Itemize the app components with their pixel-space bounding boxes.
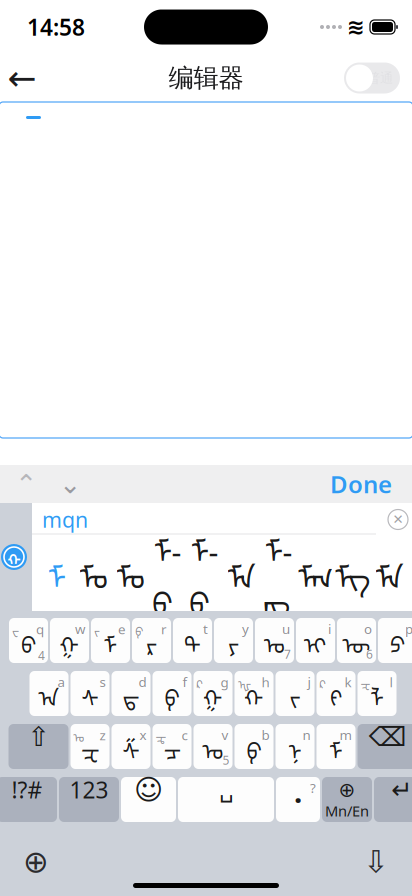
button[interactable]: Dictate — [348, 840, 404, 884]
staticText: o — [364, 620, 372, 638]
staticText: a — [57, 673, 64, 691]
button[interactable]: Return — [374, 777, 412, 822]
staticText: ᠬ — [7, 544, 20, 569]
button[interactable]: b — [234, 724, 273, 769]
staticText: ᠽ — [360, 672, 370, 692]
button[interactable]: i — [296, 618, 335, 663]
staticText: ᠮᠡ — [375, 545, 403, 598]
button[interactable]: ᠮᠬ — [297, 534, 334, 608]
staticText: ᠫ — [390, 621, 405, 660]
button[interactable]: k — [316, 671, 355, 716]
staticText: ᠼ — [155, 725, 166, 745]
staticText: ᠮᠤ — [116, 545, 144, 598]
staticText: ᠮᠥ — [190, 519, 218, 624]
button[interactable]: Previous field — [4, 465, 48, 503]
button[interactable]: ᠮᠥ — [186, 534, 223, 608]
staticText: ᠱ — [122, 727, 139, 766]
staticText: b — [261, 726, 269, 744]
button[interactable]: ᠮᠡ — [371, 534, 408, 608]
button[interactable]: n — [275, 724, 314, 769]
staticText: ᠠ — [38, 674, 59, 713]
button[interactable]: Space — [178, 777, 274, 822]
button[interactable]: o — [337, 618, 376, 663]
button[interactable]: w — [50, 618, 89, 663]
staticText: ᠰ — [81, 674, 98, 713]
button[interactable]: Emoji — [121, 777, 176, 822]
button[interactable]: m — [316, 724, 355, 769]
button[interactable]: Shift — [8, 724, 68, 769]
button[interactable]: Period — [276, 777, 320, 822]
staticText: mqn — [42, 505, 88, 534]
staticText: ᠾ — [237, 672, 250, 692]
button[interactable]: ᠮᠤ — [112, 534, 149, 608]
staticText: !?# — [11, 775, 42, 805]
button[interactable]: ᠮ — [38, 534, 75, 608]
staticText: ᠣ — [73, 725, 84, 745]
staticText: ᠮᠩ — [264, 519, 292, 624]
button[interactable]: y — [214, 618, 253, 663]
staticText: ✕ — [392, 512, 403, 527]
button[interactable]: a — [29, 671, 68, 716]
button[interactable]: q — [9, 618, 48, 663]
staticText: 普通 — [367, 70, 393, 86]
button[interactable]: h — [234, 671, 273, 716]
button[interactable]: g — [193, 671, 232, 716]
button[interactable]: Switch Mongolian English — [322, 777, 372, 822]
button[interactable]: d — [111, 671, 150, 716]
staticText: ᠴ — [163, 727, 180, 766]
staticText: m — [339, 726, 351, 744]
button[interactable]: e — [91, 618, 130, 663]
staticText: ← — [7, 58, 36, 98]
staticText: i — [328, 620, 331, 638]
button[interactable]: Change keyboard — [8, 840, 64, 884]
button[interactable]: Clear input — [380, 505, 412, 533]
button[interactable]: ᠮᠩ — [260, 534, 297, 608]
staticText: 7 — [284, 646, 291, 662]
button[interactable]: u — [255, 618, 294, 663]
staticText: ᠮᠬ — [298, 545, 333, 598]
button[interactable]: Numbers — [59, 777, 119, 822]
button[interactable]: x — [111, 724, 150, 769]
button[interactable]: Mode toggle — [344, 62, 412, 93]
button[interactable]: ᠮᠭ — [334, 534, 371, 608]
staticText: t — [203, 620, 208, 638]
staticText: 编辑器 — [168, 62, 243, 93]
button[interactable]: c — [152, 724, 191, 769]
button[interactable]: l — [357, 671, 396, 716]
staticText: ☺ — [134, 774, 163, 806]
button[interactable]: ᠮᠨ — [223, 534, 260, 608]
staticText: ᠢ — [304, 621, 327, 660]
button[interactable]: s — [70, 671, 109, 716]
staticText: ᠭ — [203, 674, 223, 713]
staticText: e — [118, 620, 126, 638]
button[interactable]: Symbols — [0, 777, 57, 822]
button[interactable]: r — [132, 618, 171, 663]
button[interactable]: ᠮᠣ — [75, 534, 112, 608]
button[interactable]: v — [193, 724, 232, 769]
button[interactable]: t — [173, 618, 212, 663]
button[interactable]: j — [275, 671, 314, 716]
button[interactable]: Delete — [357, 724, 412, 769]
button[interactable]: Back — [0, 56, 48, 100]
staticText: ᠪ — [21, 621, 36, 660]
button[interactable]: f — [152, 671, 191, 716]
button[interactable]: Done — [316, 465, 406, 503]
button[interactable]: z — [70, 724, 109, 769]
button[interactable]: p — [378, 618, 412, 663]
button[interactable]: ᠮᠦ — [149, 534, 186, 608]
button[interactable]: Next field — [48, 465, 92, 503]
staticText: ᠹ — [246, 727, 261, 766]
